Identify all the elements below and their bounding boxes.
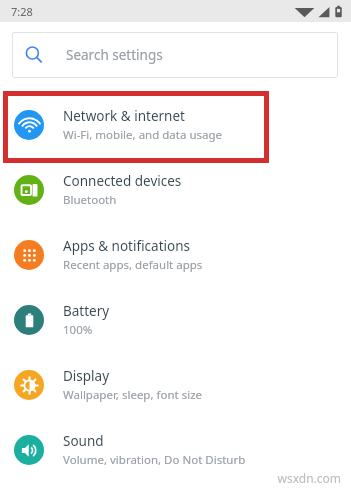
- staticText: wsxdn.com: [277, 470, 341, 486]
- staticText: Display: [63, 367, 110, 385]
- staticText: Network & internet: [63, 107, 185, 125]
- other: Search: [24, 45, 44, 65]
- button[interactable]: Network & internet: [0, 92, 351, 157]
- button[interactable]: Apps & notifications: [0, 222, 351, 287]
- button[interactable]: Display: [0, 352, 351, 417]
- staticText: Bluetooth: [63, 192, 117, 208]
- staticText: Volume, vibration, Do Not Disturb: [63, 452, 246, 468]
- staticText: Sound: [63, 432, 104, 450]
- staticText: Battery: [63, 302, 110, 320]
- staticText: Search settings: [66, 46, 163, 64]
- staticText: Wi-Fi, mobile, and data usage: [63, 127, 223, 143]
- staticText: Wallpaper, sleep, font size: [63, 387, 203, 403]
- button[interactable]: Battery: [0, 287, 351, 352]
- staticText: 100%: [63, 322, 93, 338]
- button[interactable]: Connected devices: [0, 157, 351, 222]
- button[interactable]: Sound: [0, 417, 351, 482]
- button[interactable]: Search: [12, 32, 338, 78]
- staticText: Connected devices: [63, 172, 182, 190]
- staticText: 7:28: [11, 4, 33, 19]
- staticText: Apps & notifications: [63, 237, 190, 255]
- staticText: Recent apps, default apps: [63, 257, 203, 273]
